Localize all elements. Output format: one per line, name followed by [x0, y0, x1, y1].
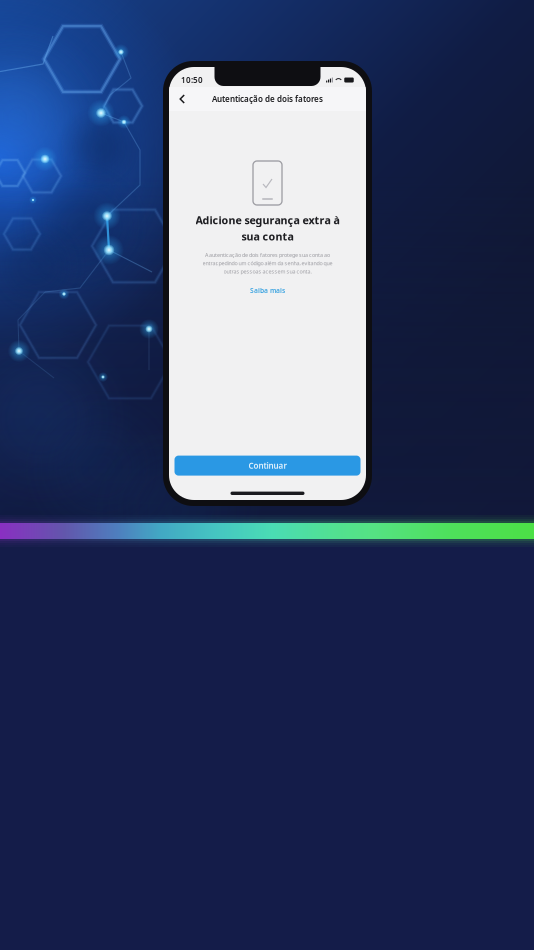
staticText: entrar, pedindo um código além da senha,… — [202, 260, 332, 267]
button[interactable]: Continuar — [174, 456, 360, 476]
staticText: 10:50 — [181, 75, 203, 85]
staticText: Saiba mais — [250, 286, 285, 295]
staticText: outras pessoas acessem sua conta. — [223, 268, 311, 275]
staticText: sua conta — [241, 229, 293, 243]
staticText: Adicione segurança extra à — [195, 213, 339, 227]
staticText: A autenticação de dois fatores protege s… — [205, 251, 330, 258]
staticText: Continuar — [248, 460, 286, 471]
staticText: Autenticação de dois fatores — [212, 94, 323, 104]
button[interactable]: Saiba mais — [246, 284, 289, 297]
button[interactable]: Voltar — [174, 89, 191, 109]
